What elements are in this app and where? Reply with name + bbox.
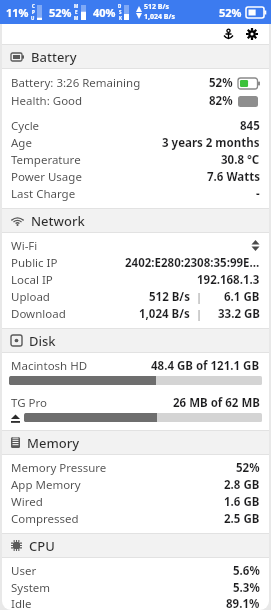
staticText: - xyxy=(256,186,260,202)
staticText: User xyxy=(11,563,37,579)
staticText: Upload xyxy=(11,289,50,305)
staticText: CPU xyxy=(29,537,55,555)
button[interactable]: Download xyxy=(2,305,269,322)
button[interactable]: Idle xyxy=(2,596,269,610)
staticText: Download xyxy=(11,306,66,322)
staticText: Local IP xyxy=(11,272,53,288)
button[interactable]: App Memory xyxy=(2,476,269,493)
staticText: 2402:E280:2308:35:99E… xyxy=(125,255,260,271)
staticText: 5.6% xyxy=(233,563,260,579)
staticText: 2.8 GB xyxy=(224,477,260,493)
staticText: M xyxy=(74,15,79,21)
staticText: E xyxy=(75,9,78,15)
staticText: 512 B/s xyxy=(149,289,190,305)
button[interactable]: Power Usage xyxy=(2,168,269,185)
button[interactable]: Public IP xyxy=(2,254,269,271)
staticText: 1.6 GB xyxy=(224,494,260,510)
staticText: 52% xyxy=(219,5,242,20)
staticText: Idle xyxy=(11,596,32,610)
button[interactable]: Compressed xyxy=(2,510,269,527)
staticText: 512 B/s xyxy=(144,2,169,12)
staticText: C xyxy=(32,3,35,9)
staticText: 192.168.1.3 xyxy=(197,272,260,288)
staticText: Temperature xyxy=(11,152,81,168)
staticText: 11% xyxy=(6,5,29,20)
button[interactable]: Health: Good xyxy=(2,92,269,110)
button[interactable]: Cycle xyxy=(2,117,269,134)
staticText: Age xyxy=(11,135,32,151)
staticText: 5.3% xyxy=(233,580,260,596)
staticText: Battery: 3:26 Remaining xyxy=(11,75,141,91)
staticText: | xyxy=(196,306,203,321)
button[interactable]: Network xyxy=(2,209,269,232)
staticText: Memory xyxy=(27,434,80,452)
button[interactable]: Eject TG Pro xyxy=(9,412,21,424)
staticText: Last Charge xyxy=(11,186,76,202)
button[interactable]: User xyxy=(2,562,269,579)
staticText: 3 years 2 months xyxy=(162,135,260,151)
staticText: 30.8 °C xyxy=(221,152,260,168)
button[interactable]: Temperature xyxy=(2,151,269,168)
button[interactable]: Pin window xyxy=(219,25,237,43)
staticText: 48.4 GB of 121.1 GB xyxy=(151,358,260,374)
staticText: 26 MB of 62 MB xyxy=(173,395,260,411)
staticText: 40% xyxy=(93,5,116,20)
staticText: Network xyxy=(31,212,85,230)
staticText: App Memory xyxy=(11,477,81,493)
staticText: 7.6 Watts xyxy=(207,169,260,185)
staticText: 6.1 GB xyxy=(224,289,260,305)
button[interactable]: Battery: 3:26 Remaining xyxy=(2,74,269,92)
button[interactable]: Local IP xyxy=(2,271,269,288)
button[interactable]: Disk xyxy=(2,329,269,352)
button[interactable]: Memory Pressure xyxy=(2,459,269,476)
staticText: Battery xyxy=(31,48,77,66)
button[interactable]: TG Pro xyxy=(2,394,269,411)
staticText: TG Pro xyxy=(11,395,47,411)
staticText: System xyxy=(11,580,51,596)
staticText: D xyxy=(118,3,122,9)
staticText: 1,024 B/s xyxy=(139,306,190,322)
staticText: Public IP xyxy=(11,255,58,271)
button[interactable]: Upload xyxy=(2,288,269,305)
staticText: Wired xyxy=(11,494,43,510)
staticText: 2.5 GB xyxy=(224,511,260,527)
button[interactable]: Settings xyxy=(243,25,261,43)
button[interactable]: Age xyxy=(2,134,269,151)
staticText: 845 xyxy=(240,118,260,134)
button[interactable]: System xyxy=(2,579,269,596)
staticText: K xyxy=(119,15,122,21)
button[interactable]: Battery xyxy=(2,45,269,68)
staticText: 1,024 B/s xyxy=(144,12,175,22)
staticText: 89.1% xyxy=(226,596,260,610)
staticText: 33.2 GB xyxy=(218,306,260,322)
staticText: 52% xyxy=(236,460,260,476)
staticText: Macintosh HD xyxy=(11,358,88,374)
button[interactable]: Wired xyxy=(2,493,269,510)
button[interactable]: Wi-Fi xyxy=(2,237,269,254)
staticText: Health: Good xyxy=(11,93,83,109)
staticText: Disk xyxy=(29,332,56,350)
button[interactable]: Last Charge xyxy=(2,185,269,202)
staticText: Wi-Fi xyxy=(11,238,38,254)
staticText: U xyxy=(31,15,35,21)
staticText: Compressed xyxy=(11,511,79,527)
staticText: Power Usage xyxy=(11,169,82,185)
button[interactable]: CPU xyxy=(2,534,269,557)
staticText: Memory Pressure xyxy=(11,460,107,476)
staticText: M xyxy=(74,3,79,9)
staticText: P xyxy=(32,9,35,15)
button[interactable]: Macintosh HD xyxy=(2,357,269,374)
button[interactable]: Memory xyxy=(2,431,269,454)
staticText: 52% xyxy=(209,75,233,91)
staticText: | xyxy=(196,289,203,304)
staticText: S xyxy=(119,9,122,15)
staticText: Cycle xyxy=(11,118,40,134)
staticText: 82% xyxy=(209,93,233,109)
staticText: 52% xyxy=(49,5,72,20)
